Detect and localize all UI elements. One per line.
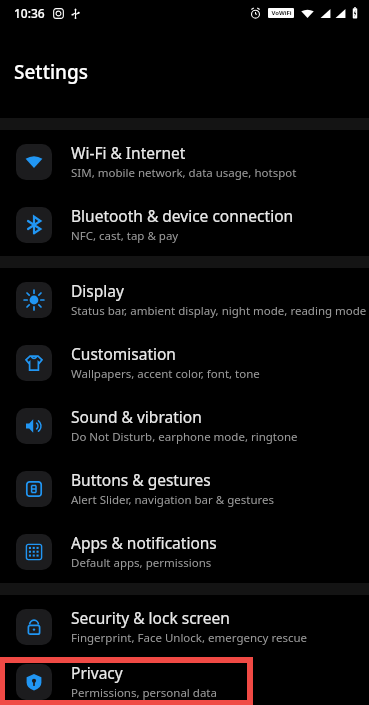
staticText: VoWiFi	[271, 9, 292, 17]
staticText: SIM, mobile network, data usage, hotspot	[71, 165, 297, 181]
button[interactable]: Security & lock screen	[0, 595, 369, 658]
staticText: Security & lock screen	[71, 607, 230, 628]
button[interactable]: Sound & vibration	[0, 394, 369, 457]
button[interactable]: Display	[0, 268, 369, 331]
staticText: Wallpapers, accent color, font, tone	[71, 366, 260, 382]
staticText: Permissions, personal data	[71, 685, 217, 701]
button[interactable]: Apps & notifications	[0, 520, 369, 583]
staticText: Status bar, ambient display, night mode,…	[71, 303, 367, 319]
button[interactable]: Wi-Fi & Internet	[0, 130, 369, 193]
staticText: Buttons & gestures	[71, 469, 211, 490]
staticText: Bluetooth & device connection	[71, 205, 294, 226]
button[interactable]: Buttons & gestures	[0, 457, 369, 520]
staticText: Sound & vibration	[71, 406, 202, 427]
button[interactable]: Privacy	[0, 658, 369, 705]
staticText: Wi-Fi & Internet	[71, 142, 186, 163]
button[interactable]: Customisation	[0, 331, 369, 394]
staticText: Display	[71, 280, 124, 301]
staticText: Customisation	[71, 343, 176, 364]
staticText: NFC, cast, tap & pay	[71, 228, 179, 244]
staticText: Privacy	[71, 662, 123, 683]
staticText: Fingerprint, Face Unlock, emergency resc…	[71, 630, 308, 646]
staticText: 10:36	[14, 5, 45, 21]
staticText: Apps & notifications	[71, 532, 217, 553]
staticText: Settings	[14, 59, 88, 85]
staticText: Do Not Disturb, earphone mode, ringtone	[71, 429, 298, 445]
staticText: Alert Slider, navigation bar & gestures	[71, 492, 275, 508]
button[interactable]: Bluetooth & device connection	[0, 193, 369, 256]
staticText: Default apps, permissions	[71, 555, 212, 571]
